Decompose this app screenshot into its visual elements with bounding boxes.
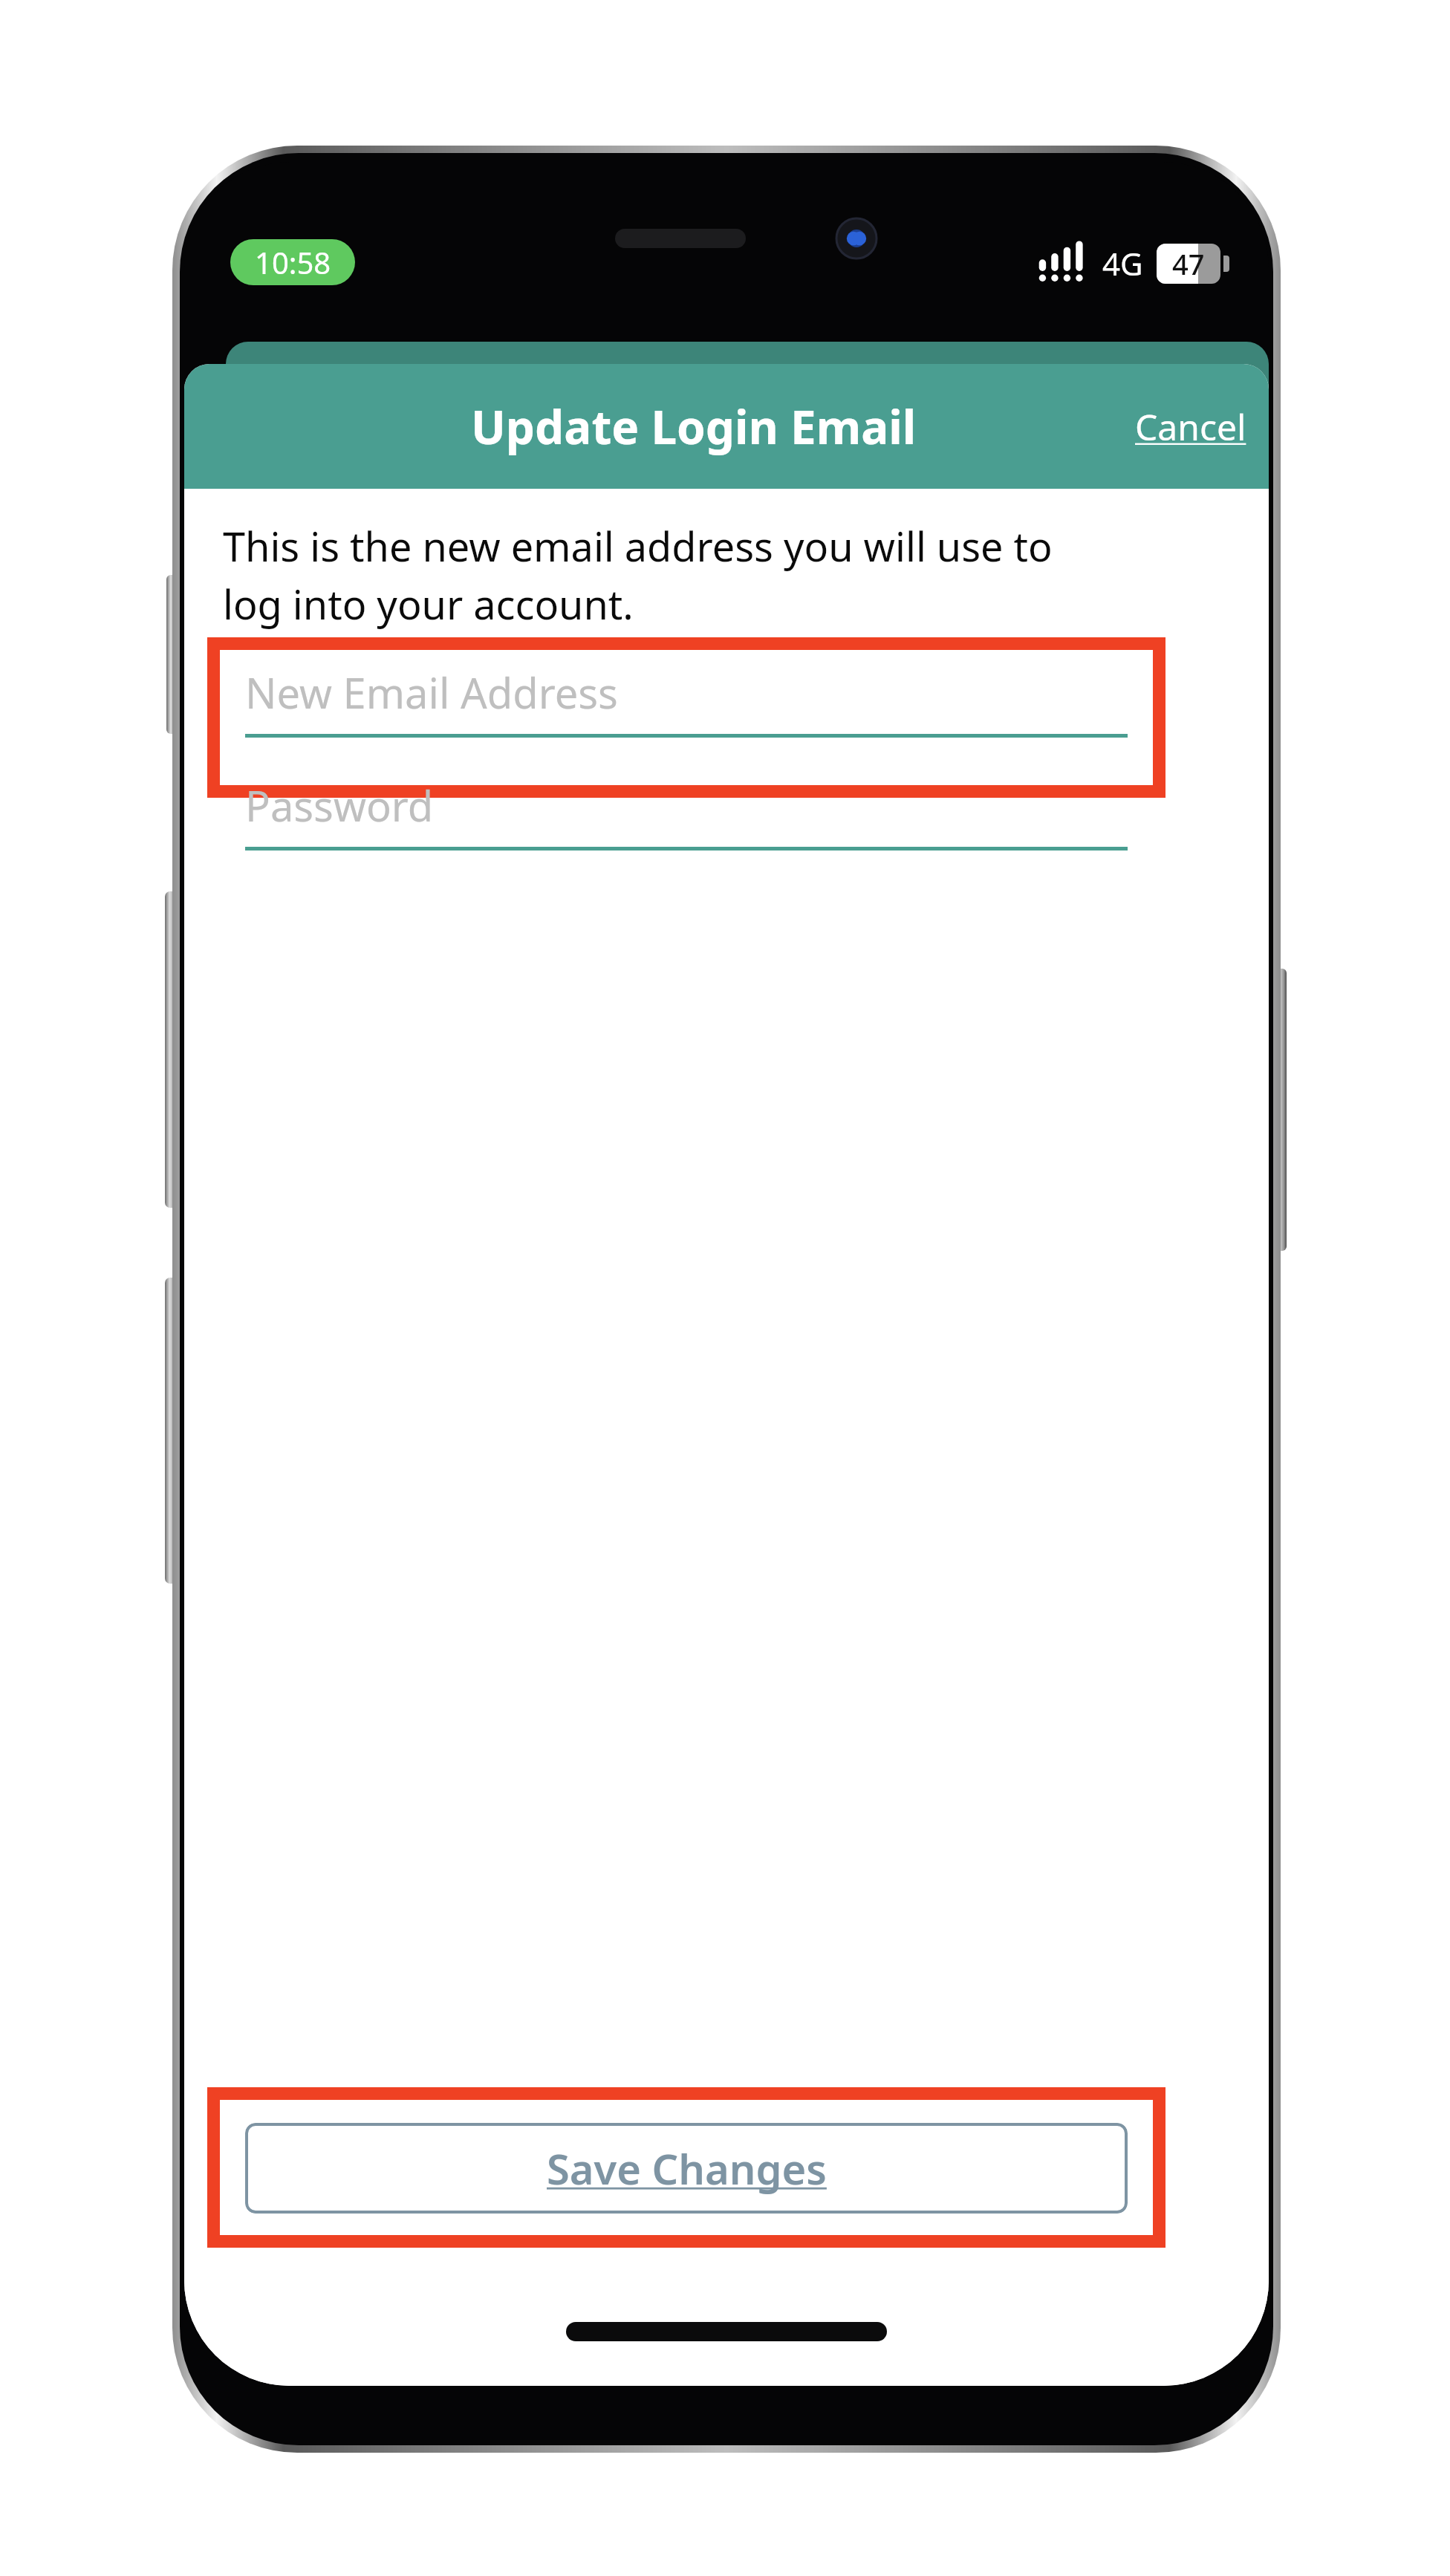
staticText: Cancel (1135, 403, 1246, 451)
staticText: This is the new email address you will u… (223, 518, 1099, 631)
button[interactable]: New Email Address (245, 664, 1128, 738)
button[interactable]: Cancel (1128, 392, 1254, 461)
button[interactable]: Save Changes (245, 2123, 1128, 2214)
staticText: Save Changes (547, 2140, 827, 2196)
staticText: Update Login Email (471, 395, 917, 458)
staticText: 47 (1172, 244, 1205, 283)
staticText: 4G (1102, 242, 1143, 284)
staticText: 10:58 (255, 242, 331, 282)
staticText: New Email Address (245, 664, 618, 721)
staticText: Password (245, 777, 434, 833)
button[interactable]: Password (245, 777, 1128, 850)
